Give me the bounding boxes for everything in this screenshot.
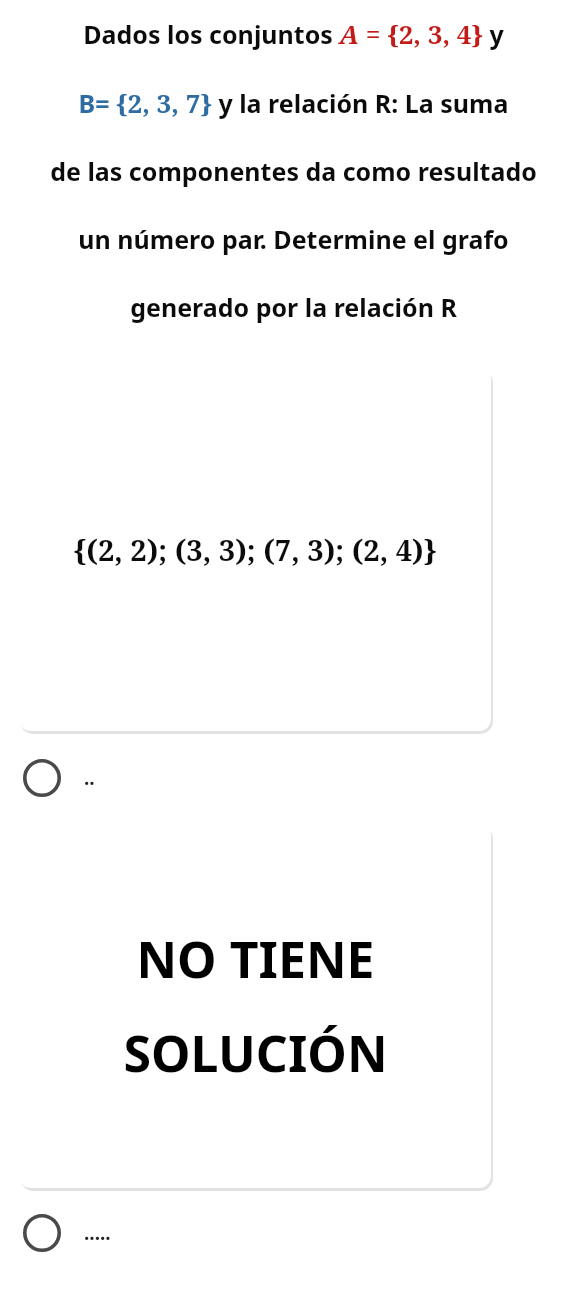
staticText: generado por la relación R <box>0 290 587 324</box>
staticText: NO TIENE <box>136 925 375 993</box>
staticText: B= {2, 3, 7} y la relación R: La suma <box>0 85 587 120</box>
button[interactable]: Select option {(2,2); (3,3); (7,3); (2,4… <box>0 756 587 800</box>
staticText: Dados los conjuntos A = {2, 3, 4} y <box>0 16 587 51</box>
staticText: {(2, 2); (3, 3); (7, 3); (2, 4)} <box>19 530 491 569</box>
staticText: SOLUCIÓN <box>123 1019 388 1087</box>
staticText: .. <box>84 765 95 791</box>
staticText: de las componentes da como resultado <box>0 154 587 188</box>
button[interactable]: Select option NO TIENE SOLUCIÓN <box>0 1211 587 1255</box>
staticText: un número par. Determine el grafo <box>0 222 587 256</box>
staticText: ..... <box>84 1220 111 1246</box>
